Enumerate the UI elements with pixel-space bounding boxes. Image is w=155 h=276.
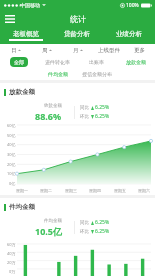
staticText: 更多 bbox=[134, 47, 145, 54]
staticText: 放款金额 bbox=[9, 88, 35, 96]
button[interactable]: 更多 bbox=[124, 44, 155, 56]
staticText: 50亿 bbox=[7, 133, 16, 138]
staticText: 放款金额 bbox=[126, 59, 146, 65]
button[interactable]: Menu bbox=[3, 12, 17, 26]
button[interactable]: 上线型件 bbox=[93, 44, 124, 56]
button[interactable]: 件均金额 bbox=[0, 198, 155, 276]
button[interactable]: 件均金额 bbox=[44, 69, 72, 79]
staticText: 10亿 bbox=[7, 171, 16, 176]
staticText: 40万 bbox=[7, 251, 16, 256]
staticText: 60亿 bbox=[7, 123, 16, 128]
staticText: 星期二 bbox=[40, 188, 52, 193]
staticText: 出账率 bbox=[89, 59, 104, 65]
staticText: 6.25% bbox=[95, 219, 110, 226]
button[interactable]: 周 bbox=[31, 44, 62, 56]
staticText: 上线型件 bbox=[98, 47, 120, 54]
staticText: 日 bbox=[11, 47, 17, 54]
staticText: 环比 bbox=[80, 229, 89, 235]
staticText: 88.6% bbox=[35, 110, 62, 122]
staticText: 星期五 bbox=[114, 188, 126, 193]
staticText: 星期四 bbox=[89, 188, 101, 193]
staticText: 授信金额分布 bbox=[82, 71, 112, 77]
staticText: 6.25% bbox=[95, 113, 110, 120]
button[interactable]: 全部 bbox=[10, 57, 28, 67]
button[interactable]: 日 bbox=[0, 44, 31, 56]
staticText: 100% bbox=[126, 2, 139, 9]
staticText: 件均金额 bbox=[48, 71, 68, 77]
staticText: 环比 bbox=[80, 114, 89, 120]
staticText: 同比 bbox=[80, 220, 89, 226]
button[interactable]: 出账率 bbox=[85, 57, 108, 67]
staticText: 星期一 bbox=[16, 188, 28, 193]
button[interactable]: 放款金额 bbox=[122, 57, 150, 67]
staticText: 60万 bbox=[7, 242, 16, 247]
button[interactable]: 放款金额 bbox=[0, 83, 155, 195]
staticText: 40亿 bbox=[7, 142, 16, 147]
staticText: 同比 bbox=[80, 105, 89, 111]
staticText: 统计 bbox=[70, 14, 86, 24]
staticText: 件均金额 bbox=[9, 203, 35, 211]
staticText: 业绩分析 bbox=[116, 30, 142, 38]
staticText: 老板概览 bbox=[13, 30, 39, 38]
staticText: 月 bbox=[73, 47, 79, 54]
button[interactable]: 进件转化率 bbox=[41, 57, 74, 67]
staticText: 贷龄分析 bbox=[64, 30, 90, 38]
staticText: 周 bbox=[42, 47, 48, 54]
staticText: 星期三 bbox=[65, 188, 77, 193]
button[interactable]: 业绩分析 bbox=[103, 27, 155, 44]
staticText: 6.25% bbox=[95, 104, 110, 111]
staticText: 6.25% bbox=[95, 228, 110, 235]
button[interactable]: 月 bbox=[62, 44, 93, 56]
staticText: 中国移动 bbox=[20, 2, 40, 8]
staticText: 全部 bbox=[14, 59, 24, 65]
button[interactable]: 贷龄分析 bbox=[51, 27, 103, 44]
staticText: 0万 bbox=[9, 269, 16, 274]
button[interactable]: 老板概览 bbox=[0, 27, 51, 44]
staticText: 10.5亿 bbox=[35, 225, 62, 237]
staticText: 20万 bbox=[7, 260, 16, 265]
staticText: 件均金额 bbox=[44, 218, 62, 224]
staticText: 30亿 bbox=[7, 152, 16, 157]
staticText: 进件转化率 bbox=[45, 59, 70, 65]
staticText: 20亿 bbox=[7, 162, 16, 167]
staticText: 0亿 bbox=[9, 181, 16, 186]
staticText: 放款金额 bbox=[44, 103, 62, 109]
button[interactable]: 授信金额分布 bbox=[78, 69, 116, 79]
staticText: 星期六 bbox=[138, 188, 150, 193]
